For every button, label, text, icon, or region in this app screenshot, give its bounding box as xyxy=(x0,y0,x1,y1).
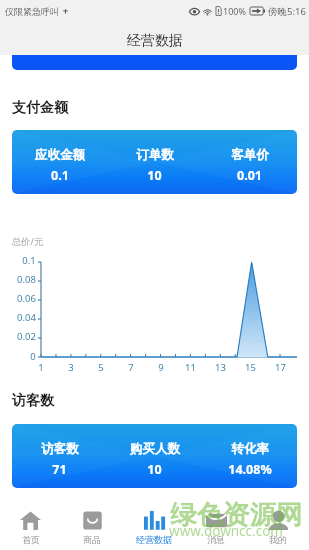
staticText: 0.1 xyxy=(22,254,36,267)
button[interactable]: 我的 xyxy=(247,495,309,550)
staticText: 71 xyxy=(52,461,67,478)
staticText: 15 xyxy=(245,361,256,374)
staticText: 9 xyxy=(158,361,164,374)
staticText: 0.1 xyxy=(51,167,69,184)
staticText: 商品 xyxy=(83,534,101,545)
button[interactable]: 访客数 xyxy=(12,424,297,488)
staticText: 傍晚5:16 xyxy=(268,5,306,18)
staticText: 访客数 xyxy=(12,392,54,410)
staticText: www.downcc.com xyxy=(169,522,283,540)
staticText: 0.08 xyxy=(17,273,36,286)
staticText: 购买人数 xyxy=(130,441,180,457)
staticText: 5 xyxy=(98,361,104,374)
staticText: 0 xyxy=(30,350,36,363)
button[interactable] xyxy=(12,55,297,70)
button[interactable]: 应收金额 xyxy=(12,130,297,194)
staticText: 11 xyxy=(185,361,196,374)
staticText: 订单数 xyxy=(136,147,174,163)
staticText: 100% xyxy=(223,5,246,17)
staticText: 绿色资源网 xyxy=(170,498,303,531)
staticText: 0.04 xyxy=(17,311,36,324)
staticText: 首页 xyxy=(22,534,40,545)
staticText: 13 xyxy=(215,361,226,374)
staticText: 经营数据 xyxy=(127,32,183,50)
staticText: 14.08% xyxy=(228,461,272,478)
staticText: 0.06 xyxy=(17,292,36,305)
staticText: 我的 xyxy=(269,534,287,545)
staticText: 0.01 xyxy=(237,167,262,184)
staticText: 3 xyxy=(68,361,74,374)
staticText: 总价/元 xyxy=(11,235,44,248)
staticText: 17 xyxy=(275,361,286,374)
staticText: 访客数 xyxy=(41,441,79,457)
staticText: 转化率 xyxy=(231,441,269,457)
staticText: 1 xyxy=(38,361,44,374)
staticText: 10 xyxy=(147,167,162,184)
staticText: 仅限紧急呼叫 xyxy=(5,6,59,17)
staticText: 7 xyxy=(128,361,134,374)
staticText: 经营数据 xyxy=(136,534,172,545)
button[interactable]: 商品 xyxy=(61,495,123,550)
button[interactable]: 经营数据 xyxy=(123,495,185,550)
staticText: 10 xyxy=(147,461,162,478)
staticText: 客单价 xyxy=(231,147,269,163)
staticText: 消息 xyxy=(207,534,225,545)
staticText: 支付金额 xyxy=(12,99,68,117)
staticText: 应收金额 xyxy=(35,147,85,163)
button[interactable]: 消息 xyxy=(185,495,247,550)
button[interactable]: 首页 xyxy=(0,495,61,550)
staticText: 0.02 xyxy=(17,330,36,343)
